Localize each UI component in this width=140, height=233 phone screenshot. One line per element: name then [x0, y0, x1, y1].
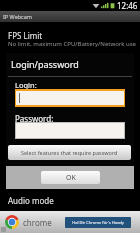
- staticText: Login:: [15, 80, 37, 90]
- staticText: Hol Dir Chrome für's Handy: [72, 220, 124, 225]
- button[interactable]: chrome: [0, 211, 140, 233]
- staticText: IP Webcam: [3, 13, 32, 20]
- staticText: OK: [66, 173, 76, 183]
- button[interactable]: Select features that require password: [8, 145, 131, 160]
- staticText: No limit, maximum CPU/Battery/Network us…: [8, 40, 136, 48]
- button[interactable]: [16, 91, 124, 105]
- button[interactable]: IP Webcam: [0, 11, 140, 22]
- staticText: Select features that require password: [21, 149, 118, 156]
- staticText: Password:: [15, 113, 54, 124]
- staticText: Login/password: [11, 58, 79, 70]
- staticText: FPS Limit: [8, 30, 43, 41]
- staticText: chrome: [23, 217, 52, 228]
- staticText: 12:46: [117, 0, 138, 11]
- button[interactable]: Hol Dir Chrome für's Handy: [65, 217, 131, 228]
- staticText: Audio mode: [8, 195, 54, 206]
- button[interactable]: OK: [41, 171, 100, 184]
